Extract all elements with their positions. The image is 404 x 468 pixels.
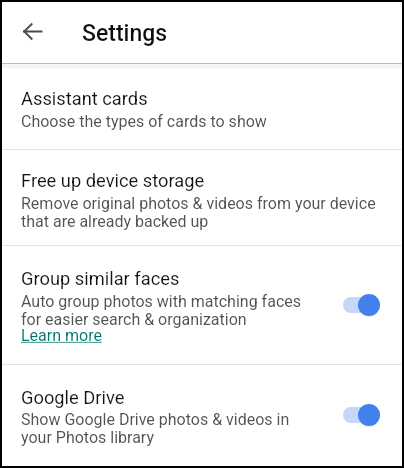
staticText: Choose the types of cards to show bbox=[21, 112, 267, 131]
button[interactable]: Back bbox=[10, 9, 54, 53]
button[interactable]: Toggle on bbox=[343, 404, 381, 426]
button[interactable]: Group similar faces bbox=[2, 246, 402, 364]
staticText: Learn more bbox=[21, 326, 102, 345]
button[interactable]: Google Drive bbox=[2, 365, 402, 466]
staticText: Google Drive bbox=[21, 387, 125, 408]
staticText: Show Google Drive photos & videos in you… bbox=[21, 410, 290, 447]
button[interactable]: Assistant cards bbox=[2, 64, 402, 149]
staticText: Group similar faces bbox=[21, 268, 180, 289]
staticText: Settings bbox=[82, 20, 168, 47]
staticText: Assistant cards bbox=[21, 88, 148, 109]
button[interactable]: Toggle on bbox=[343, 294, 381, 316]
button[interactable]: Learn more bbox=[21, 326, 102, 345]
button[interactable]: Free up device storage bbox=[2, 150, 402, 245]
staticText: Remove original photos & videos from you… bbox=[21, 194, 376, 231]
staticText: Auto group photos with matching faces fo… bbox=[21, 292, 301, 329]
staticText: Free up device storage bbox=[21, 170, 205, 191]
